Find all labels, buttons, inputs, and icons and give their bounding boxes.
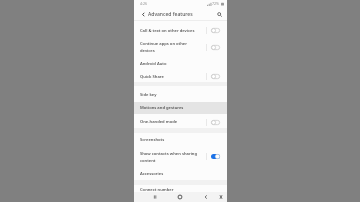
- button[interactable]: Connect number: [134, 185, 227, 195]
- staticText: Screenshots: [140, 137, 165, 143]
- button[interactable]: Back: [138, 9, 148, 19]
- button[interactable]: Motions and gestures: [134, 102, 227, 114]
- staticText: Side key: [140, 92, 157, 98]
- button[interactable]: Quick Share: [134, 70, 227, 83]
- button[interactable]: Android Auto: [134, 57, 227, 70]
- staticText: Motions and gestures: [140, 105, 184, 111]
- staticText: Accessories: [140, 171, 164, 177]
- button[interactable]: Side key: [134, 87, 227, 102]
- staticText: Quick Share: [140, 74, 164, 80]
- button[interactable]: Home: [175, 192, 185, 202]
- button[interactable]: Accessories: [134, 167, 227, 181]
- button[interactable]: Call & text on other devices: [134, 23, 227, 38]
- button[interactable]: Toggle: [211, 28, 220, 33]
- button[interactable]: Toggle: [211, 45, 220, 50]
- button[interactable]: Search: [214, 9, 224, 19]
- button[interactable]: Back: [201, 192, 211, 202]
- staticText: Connect number: [140, 187, 174, 193]
- button[interactable]: Show contacts when sharing content: [134, 146, 227, 167]
- button[interactable]: Toggle: [211, 74, 220, 79]
- staticText: Show contacts when sharing content: [140, 151, 199, 163]
- staticText: One-handed mode: [140, 119, 178, 125]
- button[interactable]: Keyboard: [216, 192, 226, 202]
- button[interactable]: Continue apps on other devices: [134, 38, 227, 56]
- staticText: Advanced features: [148, 11, 193, 18]
- button[interactable]: Screenshots: [134, 133, 227, 146]
- staticText: Continue apps on other devices: [140, 41, 199, 53]
- staticText: 72%: [212, 1, 220, 6]
- staticText: Android Auto: [140, 61, 167, 67]
- staticText: Call & text on other devices: [140, 28, 195, 34]
- staticText: 4:26: [140, 1, 148, 6]
- button[interactable]: Toggle: [211, 154, 220, 159]
- button[interactable]: One-handed mode: [134, 114, 227, 130]
- button[interactable]: Recents: [150, 192, 160, 202]
- button[interactable]: Toggle: [211, 120, 220, 125]
